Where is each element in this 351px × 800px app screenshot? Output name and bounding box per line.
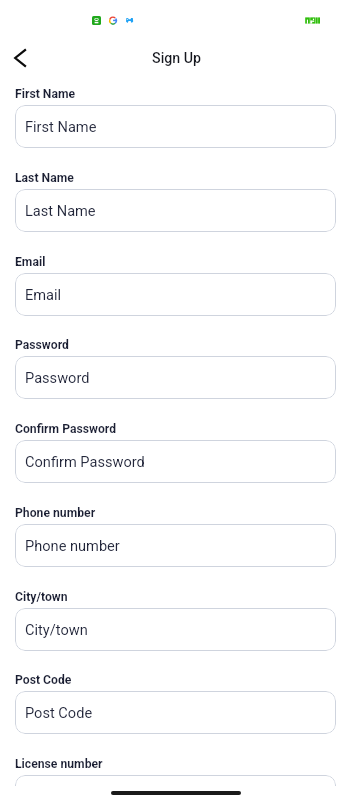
button[interactable]: First Name bbox=[15, 105, 336, 148]
button[interactable]: Email bbox=[15, 273, 336, 316]
staticText: Password bbox=[25, 369, 90, 386]
staticText: Post Code bbox=[25, 704, 93, 721]
staticText: Password bbox=[15, 338, 69, 352]
button[interactable]: Confirm Password bbox=[15, 440, 336, 483]
staticText: Email bbox=[25, 286, 62, 303]
button[interactable]: Post Code bbox=[15, 691, 336, 734]
button[interactable]: License number bbox=[15, 775, 336, 786]
staticText: Confirm Password bbox=[15, 422, 117, 436]
staticText: Phone number bbox=[15, 506, 96, 520]
button[interactable]: Back bbox=[2, 40, 38, 76]
staticText: Phone number bbox=[25, 537, 120, 554]
staticText: Post Code bbox=[15, 673, 72, 687]
staticText: Email bbox=[15, 255, 46, 269]
staticText: Last Name bbox=[15, 171, 74, 185]
button[interactable]: Phone number bbox=[15, 524, 336, 567]
staticText: First Name bbox=[15, 87, 76, 101]
button[interactable]: Last Name bbox=[15, 189, 336, 232]
staticText: First Name bbox=[25, 118, 97, 135]
button[interactable]: Password bbox=[15, 356, 336, 399]
button[interactable]: City/town bbox=[15, 608, 336, 651]
staticText: City/town bbox=[15, 590, 68, 604]
staticText: City/town bbox=[25, 621, 88, 638]
staticText: Sign Up bbox=[152, 50, 201, 67]
staticText: Confirm Password bbox=[25, 453, 145, 470]
staticText: Last Name bbox=[25, 202, 96, 219]
staticText: License number bbox=[15, 757, 103, 771]
